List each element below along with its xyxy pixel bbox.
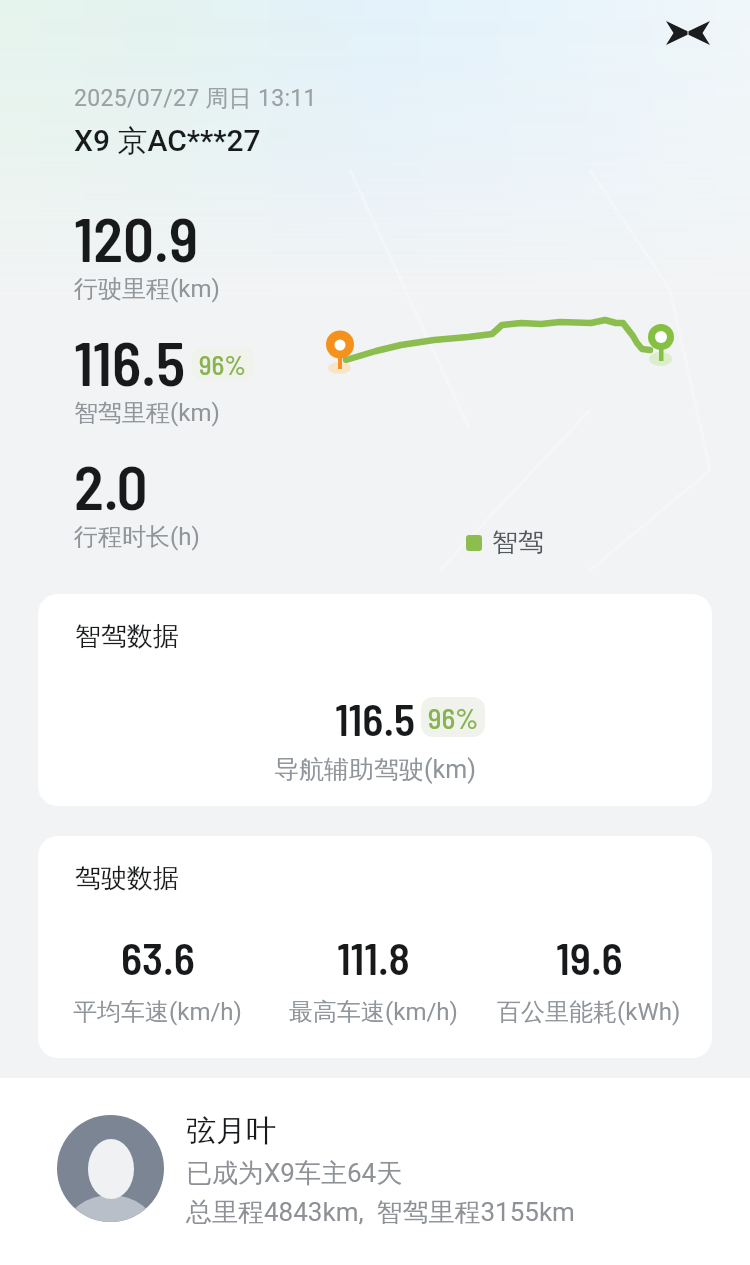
button[interactable]: 智驾数据 <box>38 594 712 806</box>
staticText: 2.0 <box>74 449 148 522</box>
staticText: 19.6 <box>556 931 623 984</box>
staticText: 智驾里程(km) <box>74 398 220 428</box>
staticText: 驾驶数据 <box>75 862 179 895</box>
staticText: 116.5 <box>335 692 416 745</box>
staticText: 行程时长(h) <box>74 522 200 552</box>
staticText: 总里程4843km, 智驾里程3155km <box>186 1196 575 1229</box>
staticText: 2025/07/27 周日 13:11 <box>74 84 317 113</box>
staticText: 百公里能耗(kWh) <box>497 997 681 1027</box>
staticText: 已成为X9车主64天 <box>186 1157 403 1190</box>
staticText: 111.8 <box>337 931 410 984</box>
staticText: 智驾 <box>492 526 544 559</box>
staticText: 智驾数据 <box>75 620 179 653</box>
staticText: X9 京AC***27 <box>74 122 261 160</box>
button[interactable]: 弦月叶 <box>0 1078 750 1265</box>
staticText: 行驶里程(km) <box>74 274 220 304</box>
staticText: 116.5 <box>74 325 186 398</box>
staticText: 120.9 <box>74 201 199 274</box>
staticText: 96% <box>428 700 479 735</box>
staticText: 最高车速(km/h) <box>289 997 458 1027</box>
staticText: 导航辅助驾驶(km) <box>274 754 476 785</box>
staticText: 平均车速(km/h) <box>73 997 242 1027</box>
staticText: 弦月叶 <box>186 1112 276 1150</box>
button[interactable] <box>666 21 710 45</box>
staticText: 63.6 <box>121 931 195 984</box>
staticText: 96% <box>199 348 247 380</box>
button[interactable]: 驾驶数据 <box>38 836 712 1058</box>
